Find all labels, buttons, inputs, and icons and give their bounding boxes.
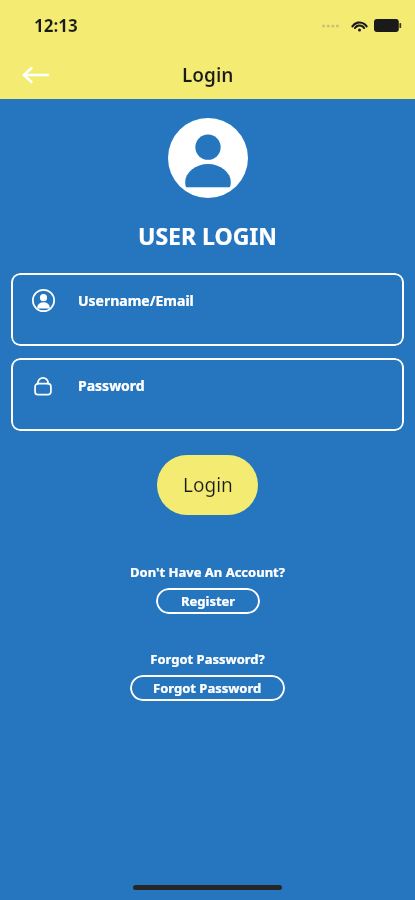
staticText: Don't Have An Account? [0, 563, 415, 581]
staticText: 12:13 [34, 14, 78, 37]
staticText: Forgot Password [153, 679, 262, 697]
button[interactable]: Forgot Password [130, 675, 285, 701]
staticText: Login [183, 472, 233, 498]
button[interactable]: Password [11, 358, 404, 431]
staticText: Password [78, 376, 145, 395]
staticText: Username/Email [78, 291, 194, 310]
staticText: Login [182, 62, 234, 88]
staticText: Register [181, 592, 236, 610]
staticText: Forgot Password? [0, 650, 415, 668]
button[interactable]: Register [156, 588, 260, 614]
button[interactable]: Back [14, 53, 58, 97]
button[interactable]: Login [157, 455, 258, 515]
staticText: USER LOGIN [0, 220, 415, 251]
button[interactable]: Username/Email [11, 273, 404, 346]
